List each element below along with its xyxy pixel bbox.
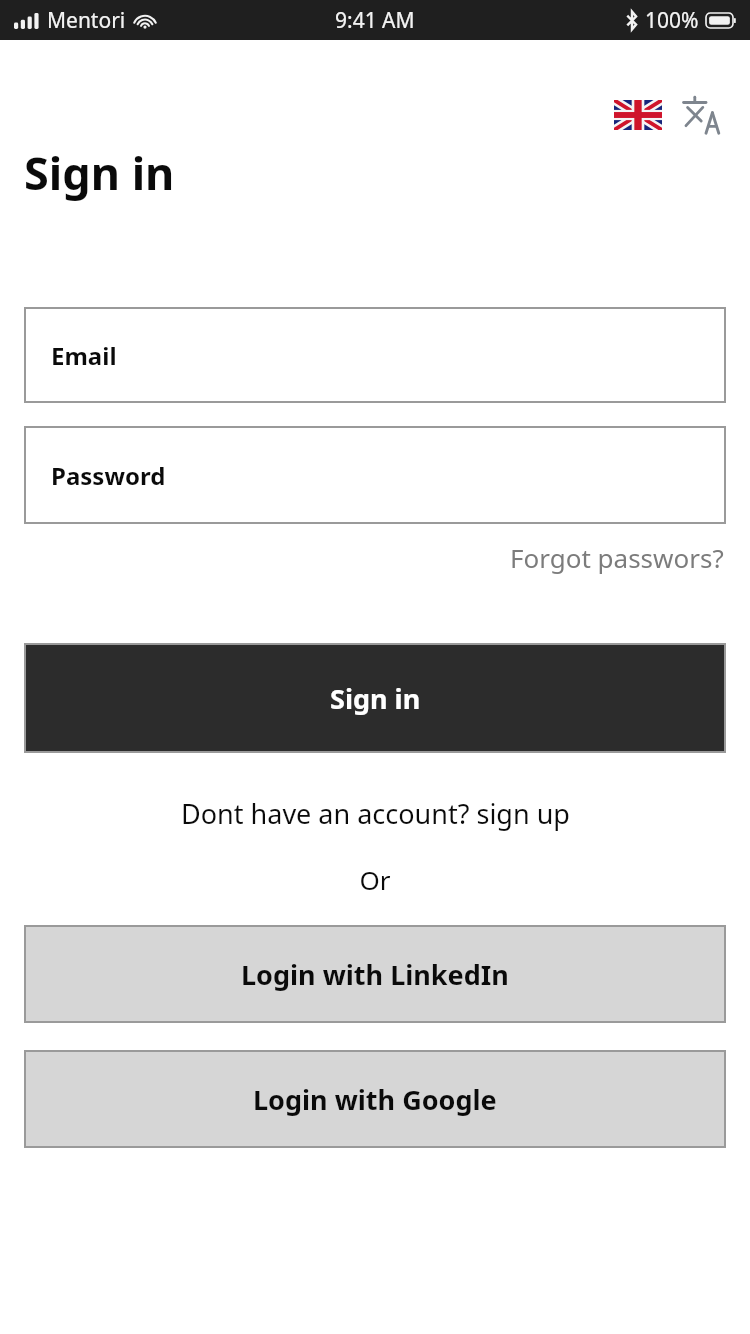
staticText: Login with LinkedIn xyxy=(241,956,509,993)
button[interactable]: Login with Google xyxy=(26,1052,724,1146)
staticText: Or xyxy=(24,862,726,897)
button[interactable]: Dont have an account? sign up xyxy=(177,791,574,836)
button[interactable]: Login with LinkedIn xyxy=(26,927,724,1021)
staticText: Login with Google xyxy=(253,1081,497,1118)
button[interactable]: Email xyxy=(24,307,726,403)
button[interactable]: Forgot passwors? xyxy=(508,536,726,579)
staticText: Sign in xyxy=(330,680,421,717)
staticText: Dont have an account? sign up xyxy=(181,795,570,832)
button[interactable]: Language: English xyxy=(610,96,666,134)
button[interactable]: Password xyxy=(24,426,726,524)
staticText: Sign in xyxy=(24,142,175,203)
button[interactable]: Translate xyxy=(678,92,726,138)
staticText: Email xyxy=(51,339,117,372)
button[interactable]: Sign in xyxy=(26,645,724,751)
staticText: 100% xyxy=(645,6,699,35)
staticText: 9:41 AM xyxy=(335,6,415,35)
staticText: Mentori xyxy=(47,6,126,35)
staticText: Forgot passwors? xyxy=(510,540,724,575)
staticText: Password xyxy=(51,459,166,492)
